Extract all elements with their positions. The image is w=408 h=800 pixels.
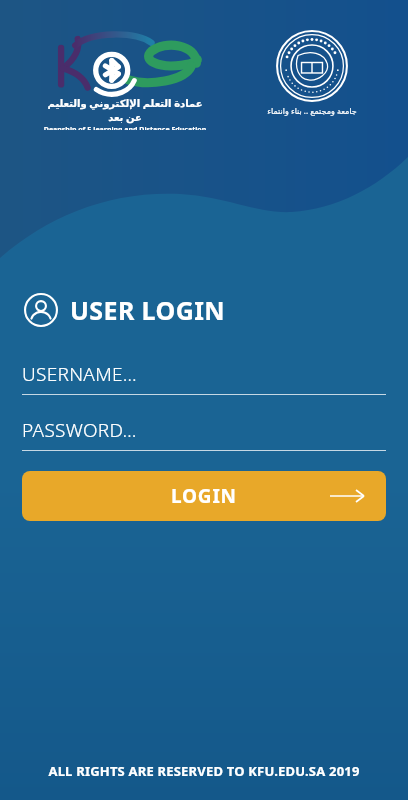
staticText: USER LOGIN [70,293,225,327]
button[interactable]: LOGIN [22,471,386,521]
staticText: LOGIN [171,483,237,509]
staticText: جامعة ومجتمع .. بناء وانتماء [260,105,364,116]
staticText: USERNAME… [22,361,138,387]
button[interactable]: USERNAME… [22,361,386,395]
staticText: PASSWORD… [22,417,137,443]
staticText: Deanship of E-learning and Distance Educ… [42,125,208,130]
staticText: عمادة التعلم الإلكتروني والتعليم عن بعد [42,96,208,124]
button[interactable]: PASSWORD… [22,417,386,451]
button[interactable]: USER LOGIN [24,293,225,327]
staticText: ALL RIGHTS ARE RESERVED TO KFU.EDU.SA 20… [0,762,408,780]
